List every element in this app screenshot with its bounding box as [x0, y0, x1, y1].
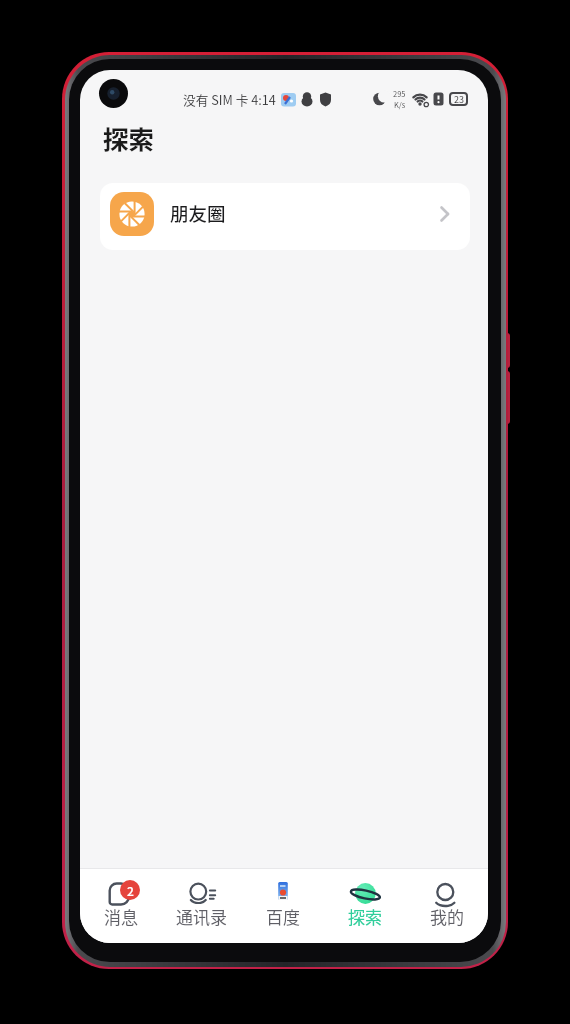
staticText: 2: [127, 882, 134, 899]
staticText: 23: [454, 93, 464, 106]
staticText: 没有 SIM 卡 4:14: [183, 90, 276, 108]
staticText: 295: [393, 88, 406, 99]
button[interactable]: 消息: [80, 869, 161, 943]
button[interactable]: 探索: [324, 869, 406, 943]
staticText: K/s: [394, 99, 406, 110]
button[interactable]: 通讯录: [161, 869, 242, 943]
staticText: 消息: [104, 904, 138, 929]
staticText: 我的: [430, 904, 464, 929]
staticText: 探索: [348, 904, 382, 929]
button[interactable]: 朋友圈: [100, 183, 470, 250]
staticText: 朋友圈: [170, 200, 226, 227]
button[interactable]: 百度: [242, 869, 324, 943]
staticText: 探索: [103, 119, 155, 156]
button[interactable]: 我的: [406, 869, 488, 943]
staticText: 通讯录: [176, 904, 227, 929]
staticText: 百度: [266, 904, 300, 929]
